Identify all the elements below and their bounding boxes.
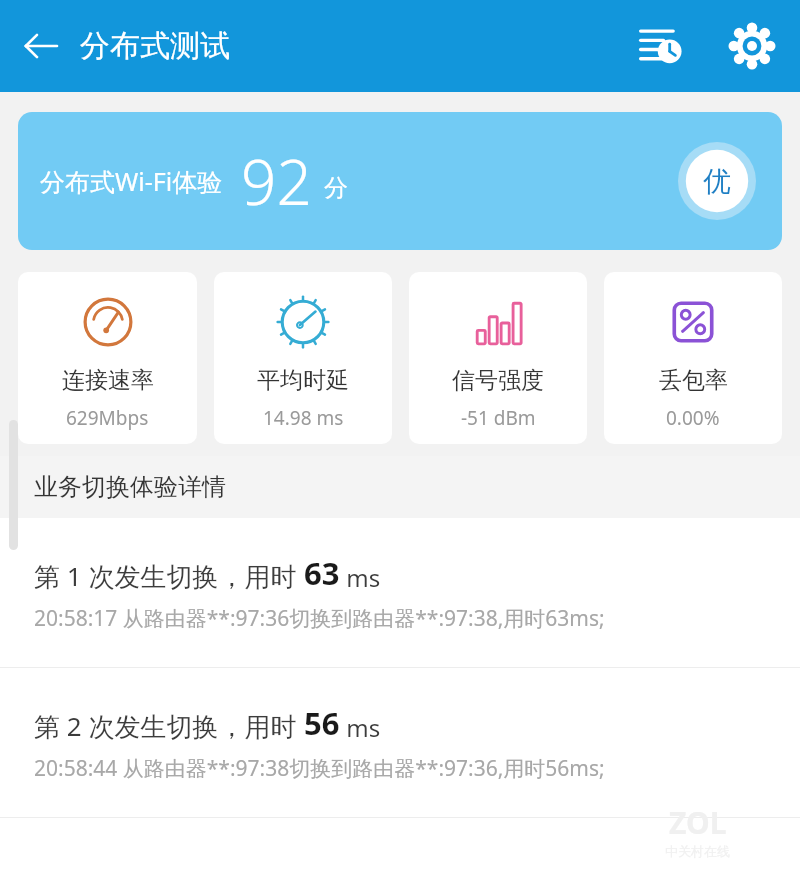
staticText: 0.00%: [666, 405, 720, 431]
staticText: 20:58:17 从路由器**:97:36切换到路由器**:97:38,用时63…: [34, 604, 605, 633]
staticText: 第 2 次发生切换，用时: [34, 708, 304, 744]
staticText: 信号强度: [452, 366, 544, 395]
button[interactable]: History: [628, 14, 692, 78]
button[interactable]: 第 1 次发生切换，用时: [0, 518, 800, 667]
staticText: ms: [340, 561, 381, 594]
staticText: 丢包率: [659, 366, 728, 395]
staticText: 14.98 ms: [263, 405, 344, 431]
button[interactable]: 第 2 次发生切换，用时: [0, 668, 800, 817]
staticText: ms: [340, 711, 381, 744]
staticText: 63: [304, 552, 340, 594]
staticText: 分: [324, 173, 348, 203]
staticText: 分布式Wi-Fi体验: [40, 164, 223, 198]
staticText: 业务切换体验详情: [34, 472, 226, 502]
staticText: 56: [304, 702, 340, 744]
button[interactable]: Settings: [720, 14, 784, 78]
button[interactable]: 丢包率: [604, 272, 782, 444]
staticText: 第 1 次发生切换，用时: [34, 558, 304, 594]
staticText: 92: [241, 139, 312, 223]
staticText: 平均时延: [257, 366, 349, 395]
staticText: -51 dBm: [461, 405, 536, 431]
staticText: 629Mbps: [66, 405, 149, 431]
staticText: 分布式测试: [80, 27, 230, 65]
button[interactable]: 平均时延: [214, 272, 392, 444]
staticText: 20:58:44 从路由器**:97:38切换到路由器**:97:36,用时56…: [34, 754, 605, 783]
staticText: 连接速率: [62, 366, 154, 395]
button[interactable]: 分布式Wi-Fi体验: [18, 112, 782, 250]
staticText: ZOL: [669, 802, 727, 843]
staticText: 优: [703, 164, 731, 199]
button[interactable]: Back: [10, 15, 72, 77]
staticText: 中关村在线: [665, 843, 730, 859]
button[interactable]: 连接速率: [18, 272, 197, 444]
button[interactable]: 信号强度: [409, 272, 587, 444]
